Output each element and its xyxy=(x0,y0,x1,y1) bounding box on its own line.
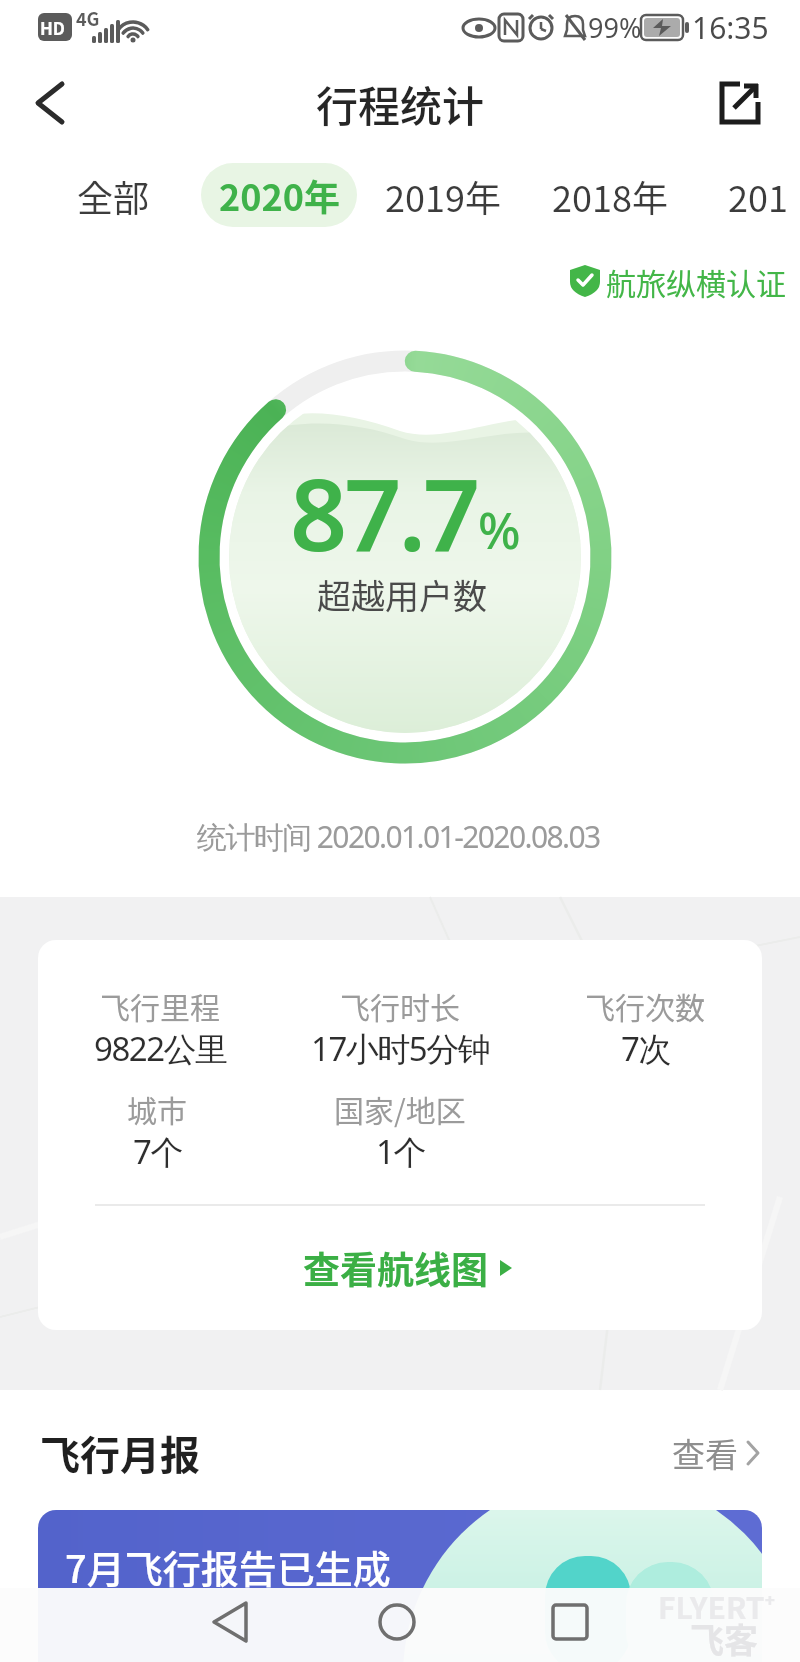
staticText: 飞客 xyxy=(690,1614,758,1662)
staticText: 城市 xyxy=(127,1087,187,1130)
button[interactable]: 全部 xyxy=(63,166,163,226)
button[interactable]: 查看航线图 xyxy=(268,1240,548,1296)
button[interactable] xyxy=(530,1595,610,1655)
button[interactable]: 2018年 xyxy=(550,166,670,226)
staticText: 超越用户数 xyxy=(317,570,487,619)
staticText: 2017年 xyxy=(728,170,800,222)
staticText: 99% xyxy=(588,9,642,46)
staticText: 飞行月报 xyxy=(40,1424,200,1482)
staticText: 行程统计 xyxy=(316,73,485,134)
staticText: 国家/地区 xyxy=(334,1087,466,1130)
staticText: 统计时间 2020.01.01-2020.08.03 xyxy=(197,816,600,857)
staticText: 7个 xyxy=(133,1129,182,1174)
staticText: 全部 xyxy=(77,170,150,222)
staticText: 查看 xyxy=(672,1429,738,1477)
staticText: % xyxy=(478,496,521,564)
staticText: 7月飞行报告已生成 xyxy=(65,1539,391,1594)
staticText: 飞行里程 xyxy=(100,984,220,1027)
staticText: 飞行时长 xyxy=(340,984,460,1027)
button[interactable]: 2020年 xyxy=(201,163,357,227)
staticText: 2019年 xyxy=(385,170,501,222)
button[interactable] xyxy=(20,75,80,131)
staticText: 16:35 xyxy=(692,7,769,48)
button[interactable] xyxy=(357,1595,437,1655)
button[interactable] xyxy=(712,76,768,132)
staticText: 飞行次数 xyxy=(585,984,705,1027)
staticText: 9822公里 xyxy=(94,1026,227,1071)
staticText: 17小时5分钟 xyxy=(311,1026,490,1071)
staticText: HD xyxy=(40,15,66,40)
staticText: 查看航线图 xyxy=(303,1241,488,1295)
staticText: 航旅纵横认证 xyxy=(606,260,786,303)
button[interactable]: 航旅纵横认证 xyxy=(560,258,780,306)
button[interactable] xyxy=(190,1595,270,1655)
button[interactable]: 2017年 xyxy=(728,166,800,226)
button[interactable]: 2019年 xyxy=(383,166,503,226)
staticText: 2018年 xyxy=(552,170,668,222)
button[interactable]: 查看 xyxy=(650,1420,770,1486)
staticText: 87.7 xyxy=(290,444,478,580)
staticText: 7次 xyxy=(621,1026,670,1071)
staticText: 1个 xyxy=(376,1129,425,1174)
staticText: 2020年 xyxy=(219,169,340,221)
button[interactable]: 7月飞行报告已生成 xyxy=(38,1510,762,1662)
staticText: 4G xyxy=(76,5,100,31)
staticText: FLYERT⁺ xyxy=(658,1584,776,1628)
